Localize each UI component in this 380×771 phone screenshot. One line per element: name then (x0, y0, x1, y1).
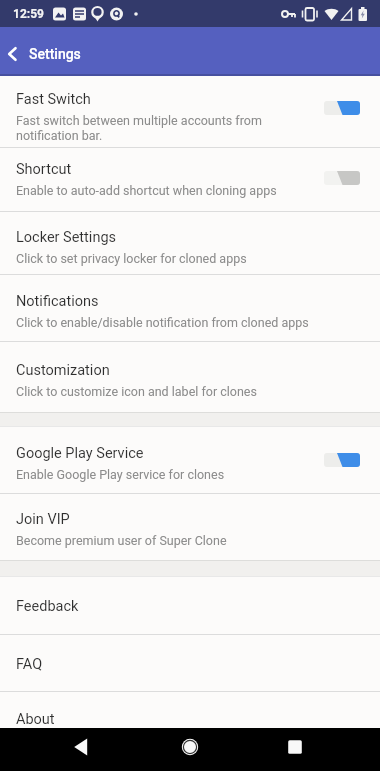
button[interactable] (324, 101, 360, 115)
button[interactable] (324, 453, 360, 467)
staticText: Google Play Service (16, 445, 144, 462)
button[interactable]: Join VIP (0, 494, 380, 560)
staticText: 12:59 (13, 7, 44, 21)
staticText: Fast Switch (16, 91, 91, 108)
staticText: Notifications (16, 293, 99, 310)
button[interactable]: About (0, 692, 380, 728)
staticText: notification bar. (16, 128, 103, 143)
staticText: Enable Google Play service for clones (16, 467, 225, 482)
staticText: Click to set privacy locker for cloned a… (16, 251, 247, 266)
button[interactable]: Fast Switch (0, 76, 380, 147)
staticText: FAQ (16, 656, 43, 673)
staticText: Become premium user of Super Clone (16, 533, 227, 548)
button[interactable]: Google Play Service (0, 427, 380, 493)
staticText: Enable to auto-add shortcut when cloning… (16, 183, 277, 198)
button[interactable] (253, 728, 380, 771)
staticText: Join VIP (16, 511, 70, 528)
button[interactable] (126, 728, 253, 771)
button[interactable]: Locker Settings (0, 212, 380, 274)
button[interactable]: Customization (0, 342, 380, 412)
button[interactable]: FAQ (0, 635, 380, 691)
staticText: Click to customize icon and label for cl… (16, 384, 257, 399)
staticText: Fast switch between multiple accounts fr… (16, 113, 262, 128)
staticText: Customization (16, 362, 110, 379)
staticText: Shortcut (16, 161, 72, 178)
staticText: About (16, 711, 55, 728)
staticText: Locker Settings (16, 229, 117, 246)
button[interactable]: Feedback (0, 577, 380, 634)
button[interactable]: Settings (0, 31, 380, 76)
button[interactable] (324, 171, 360, 185)
staticText: Click to enable/disable notification fro… (16, 315, 309, 330)
button[interactable]: Notifications (0, 275, 380, 341)
staticText: Settings (29, 46, 81, 62)
button[interactable] (0, 728, 126, 771)
staticText: Feedback (16, 598, 79, 615)
button[interactable]: Shortcut (0, 148, 380, 211)
